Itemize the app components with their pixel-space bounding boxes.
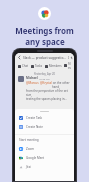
button[interactable]: Create Task bbox=[15, 113, 74, 122]
button[interactable]: More options bbox=[66, 55, 71, 60]
staticText: on the other hand, bbox=[52, 81, 71, 89]
staticText: @Marcus bbox=[26, 81, 40, 85]
button[interactable]: Search bbox=[71, 55, 72, 60]
button[interactable]: Members bbox=[44, 64, 63, 68]
staticText: Chat bbox=[22, 64, 29, 68]
staticText: Jitsi bbox=[26, 165, 31, 169]
staticText: Create Note bbox=[26, 125, 43, 129]
staticText: Michael bbox=[26, 76, 38, 80]
staticText: Meetings from bbox=[15, 25, 74, 36]
staticText: Yesterday, Apr 20 bbox=[34, 72, 56, 76]
staticText: Slack — product suggestio… bbox=[23, 56, 66, 60]
button[interactable]: App logo bbox=[38, 7, 51, 20]
button[interactable]: Jitsi bbox=[15, 162, 74, 171]
button[interactable]: Zoom bbox=[15, 144, 74, 153]
staticText: testing the spaces placing in… bbox=[26, 97, 67, 101]
button[interactable]: Back bbox=[17, 55, 22, 60]
staticText: Files bbox=[68, 62, 71, 69]
staticText: Members bbox=[49, 64, 62, 68]
staticText: Start meeting bbox=[19, 138, 39, 142]
staticText: Google Meet bbox=[26, 156, 45, 160]
staticText: Zoom bbox=[26, 147, 35, 151]
button[interactable]: Michael bbox=[18, 76, 71, 101]
staticText: Create Task bbox=[26, 116, 43, 120]
button[interactable]: Create Note bbox=[15, 122, 74, 131]
staticText: Tasks bbox=[35, 64, 43, 68]
button[interactable]: Tasks bbox=[30, 64, 44, 68]
staticText: 10:45 AM bbox=[39, 77, 50, 80]
staticText: any space bbox=[25, 36, 65, 47]
button[interactable]: Files bbox=[63, 62, 72, 69]
button[interactable]: Google Meet bbox=[15, 153, 74, 162]
staticText: from the perspective of the set size, bbox=[26, 89, 71, 97]
button[interactable]: Chat bbox=[17, 64, 30, 68]
staticText: @Krystal bbox=[40, 81, 52, 85]
